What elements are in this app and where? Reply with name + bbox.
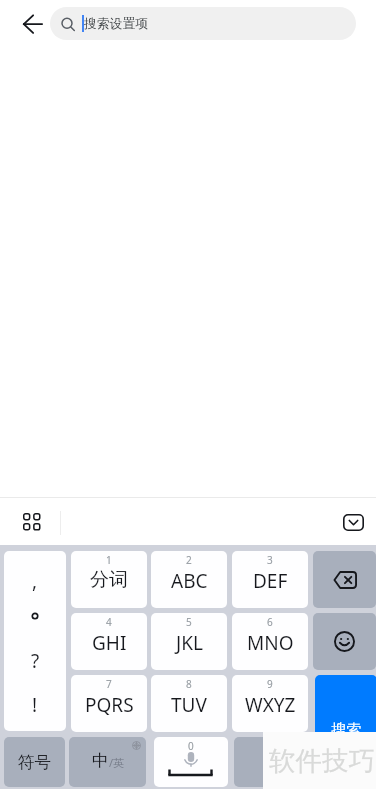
- button[interactable]: 搜索设置项: [50, 7, 356, 40]
- staticText: 1: [106, 553, 112, 567]
- staticText: ?: [31, 648, 40, 674]
- button[interactable]: 7: [71, 675, 147, 732]
- button[interactable]: 1: [71, 551, 147, 608]
- button[interactable]: 4: [71, 613, 147, 670]
- button[interactable]: Back: [14, 5, 52, 43]
- button[interactable]: Hide keyboard: [336, 505, 370, 539]
- staticText: 符号: [18, 752, 51, 773]
- staticText: 软件技巧: [269, 744, 375, 777]
- staticText: PQRS: [85, 692, 134, 718]
- staticText: 分词: [90, 568, 128, 592]
- button[interactable]: 中: [69, 737, 146, 787]
- staticText: 7: [106, 677, 112, 691]
- button[interactable]: 搜索: [315, 675, 376, 787]
- staticText: 搜索设置项: [84, 16, 148, 32]
- staticText: 搜索: [331, 720, 362, 739]
- button[interactable]: 8: [151, 675, 227, 732]
- button[interactable]: 符号: [4, 737, 65, 787]
- staticText: 4: [106, 615, 112, 629]
- button[interactable]: Backspace: [313, 551, 376, 608]
- button[interactable]: 9: [232, 675, 308, 732]
- staticText: ,: [32, 568, 38, 594]
- staticText: WXYZ: [245, 692, 296, 718]
- staticText: ABC: [171, 568, 208, 594]
- staticText: ，: [263, 752, 280, 773]
- staticText: TUV: [171, 692, 207, 718]
- staticText: 中: [92, 750, 109, 771]
- button[interactable]: 2: [151, 551, 227, 608]
- button[interactable]: 5: [151, 613, 227, 670]
- button[interactable]: Emoji: [313, 613, 376, 670]
- staticText: 9: [267, 677, 273, 691]
- button[interactable]: 3: [232, 551, 308, 608]
- button[interactable]: 6: [232, 613, 308, 670]
- staticText: DEF: [253, 568, 288, 594]
- button[interactable]: Space: [154, 737, 228, 787]
- button[interactable]: Keyboard layouts: [15, 505, 49, 539]
- button[interactable]: ,: [4, 551, 66, 731]
- staticText: GHI: [92, 630, 127, 656]
- staticText: MNO: [247, 630, 294, 656]
- staticText: 5: [186, 615, 192, 629]
- staticText: JKL: [176, 630, 203, 656]
- staticText: 8: [186, 677, 192, 691]
- staticText: !: [32, 692, 38, 718]
- staticText: 0: [188, 739, 194, 753]
- staticText: 3: [267, 553, 273, 567]
- staticText: /英: [109, 755, 125, 770]
- staticText: 6: [267, 615, 273, 629]
- staticText: 2: [186, 553, 192, 567]
- button[interactable]: Punctuation: [234, 737, 308, 787]
